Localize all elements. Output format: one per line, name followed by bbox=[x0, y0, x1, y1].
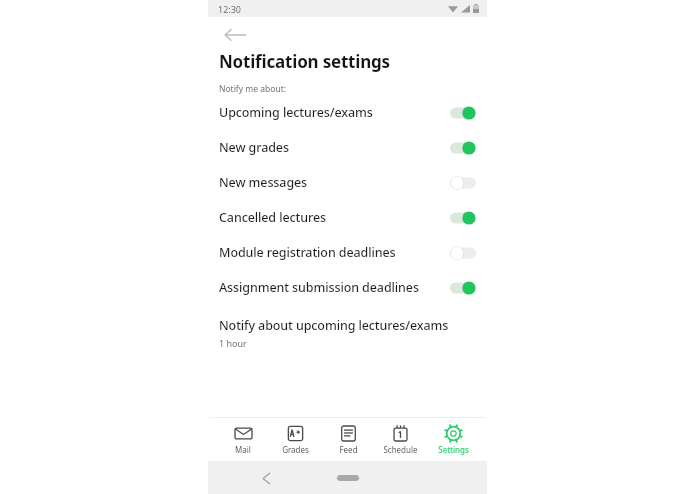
staticText: Assignment submission deadlines bbox=[219, 279, 450, 296]
staticText: Module registration deadlines bbox=[219, 244, 450, 261]
staticText: Mail bbox=[235, 444, 251, 455]
staticText: Notify about upcoming lectures/exams bbox=[219, 317, 449, 334]
button[interactable]: Settings bbox=[427, 418, 479, 461]
button[interactable]: Notify about upcoming lectures/exams bbox=[208, 315, 487, 355]
button[interactable]: New grades bbox=[208, 130, 487, 165]
staticText: Settings bbox=[438, 444, 469, 455]
staticText: 12:30 bbox=[218, 3, 242, 15]
staticText: Upcoming lectures/exams bbox=[219, 104, 450, 121]
button[interactable]: Back bbox=[218, 21, 252, 49]
button[interactable]: Assignment submission deadlines bbox=[208, 270, 487, 305]
button[interactable]: Feed bbox=[322, 418, 374, 461]
staticText: 1 hour bbox=[219, 337, 247, 349]
staticText: Grades bbox=[282, 444, 309, 455]
button[interactable]: Module registration deadlines bbox=[208, 235, 487, 270]
staticText: New messages bbox=[219, 174, 450, 191]
staticText: Cancelled lectures bbox=[219, 209, 450, 226]
staticText: Notification settings bbox=[219, 50, 390, 73]
button[interactable]: Back bbox=[256, 468, 276, 488]
staticText: Feed bbox=[339, 444, 358, 455]
staticText: New grades bbox=[219, 139, 450, 156]
button[interactable]: New messages bbox=[208, 165, 487, 200]
button[interactable]: Mail bbox=[217, 418, 269, 461]
button[interactable]: Grades bbox=[269, 418, 321, 461]
button[interactable]: Upcoming lectures/exams bbox=[208, 95, 487, 130]
staticText: Notify me about: bbox=[219, 83, 287, 95]
button[interactable]: Cancelled lectures bbox=[208, 200, 487, 235]
staticText: Schedule bbox=[383, 444, 418, 455]
button[interactable]: Schedule bbox=[374, 418, 426, 461]
button[interactable]: Home bbox=[337, 475, 359, 481]
